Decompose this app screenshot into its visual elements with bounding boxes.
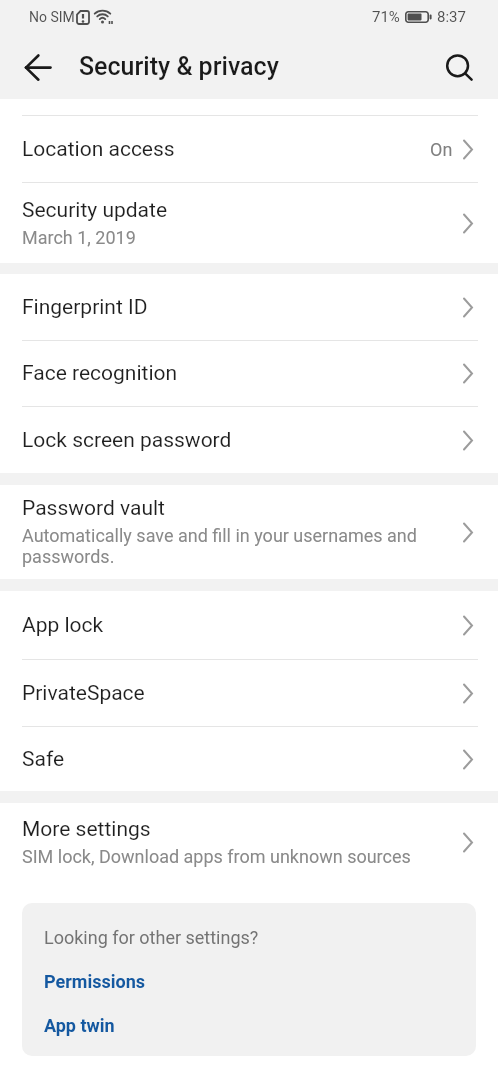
staticText: Security update (22, 198, 168, 223)
staticText: March 1, 2019 (22, 227, 136, 248)
button[interactable]: Location access (0, 116, 498, 182)
staticText: App lock (22, 613, 104, 638)
staticText: Location access (22, 137, 175, 162)
button[interactable] (0, 34, 56, 99)
button[interactable]: Safe (0, 727, 498, 791)
button[interactable]: App lock (0, 591, 498, 659)
button[interactable] (436, 34, 498, 99)
button[interactable]: App twin (44, 1015, 115, 1036)
staticText: SIM lock, Download apps from unknown sou… (22, 846, 411, 867)
button[interactable]: More settings (0, 803, 498, 881)
staticText: 8:37 (437, 8, 466, 26)
staticText: More settings (22, 817, 151, 842)
staticText: App twin (44, 1015, 115, 1036)
staticText: Password vault (22, 496, 165, 521)
staticText: PrivateSpace (22, 681, 145, 706)
button[interactable]: Security update (0, 183, 498, 263)
staticText: No SIM (29, 9, 75, 25)
staticText: Looking for other settings? (44, 927, 259, 948)
button[interactable]: PrivateSpace (0, 660, 498, 726)
button[interactable]: Permissions (44, 971, 145, 992)
staticText: Face recognition (22, 361, 178, 386)
staticText: Lock screen password (22, 428, 232, 453)
staticText: Automatically save and fill in your user… (22, 525, 417, 568)
staticText: Security & privacy (79, 52, 279, 81)
staticText: 71% (372, 8, 400, 26)
button[interactable]: Password vault (0, 485, 498, 579)
staticText: Fingerprint ID (22, 295, 148, 320)
button[interactable]: Lock screen password (0, 407, 498, 473)
button[interactable]: Fingerprint ID (0, 274, 498, 340)
staticText: Safe (22, 747, 65, 772)
staticText: On (430, 139, 453, 160)
button[interactable]: Face recognition (0, 341, 498, 406)
staticText: Permissions (44, 971, 145, 992)
